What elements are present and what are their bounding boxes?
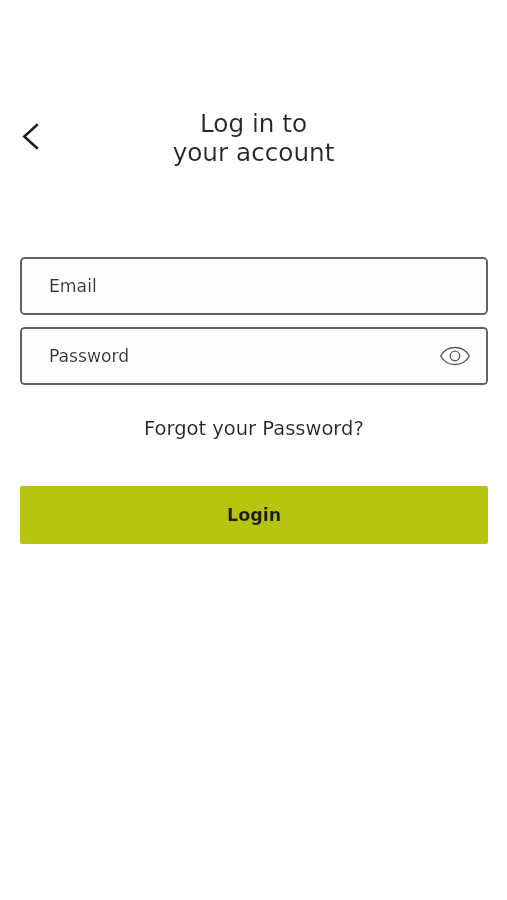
staticText: Log in to <box>0 109 507 138</box>
staticText: Login <box>227 505 282 525</box>
staticText: Email <box>49 276 97 296</box>
button[interactable]: Password <box>20 327 488 385</box>
button[interactable]: Login <box>20 486 488 544</box>
staticText: Password <box>49 346 130 366</box>
button[interactable]: Forgot your Password? <box>136 412 372 445</box>
button[interactable]: Email <box>20 257 488 315</box>
staticText: your account <box>0 138 507 167</box>
button[interactable]: Show password <box>431 332 479 380</box>
button[interactable]: Back <box>7 112 55 160</box>
